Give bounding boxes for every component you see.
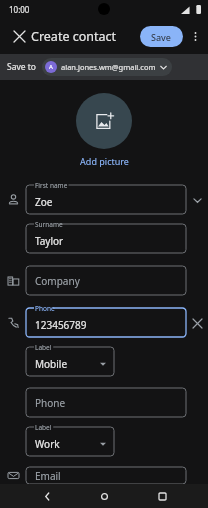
staticText: Save to <box>7 61 36 73</box>
staticText: Save <box>151 31 172 43</box>
button[interactable]: Label <box>26 347 114 376</box>
staticText: Taylor <box>35 234 64 248</box>
staticText: alan.jones.wm@gmail.com <box>61 62 156 72</box>
staticText: Mobile <box>35 357 68 371</box>
button[interactable]: Clear phone <box>188 314 206 332</box>
staticText: A <box>49 63 53 71</box>
staticText: Label <box>35 423 52 432</box>
staticText: Company <box>35 274 80 288</box>
button[interactable]: Email <box>26 467 186 484</box>
staticText: Phone <box>35 396 66 410</box>
button[interactable]: Add picture <box>80 155 129 167</box>
staticText: 123456789 <box>35 318 87 332</box>
button[interactable]: Company <box>26 266 186 295</box>
staticText: Surname <box>35 220 63 229</box>
staticText: Email <box>35 469 61 483</box>
staticText: Create contact <box>31 28 117 45</box>
button[interactable]: Save <box>140 26 183 47</box>
button[interactable]: Surname <box>26 224 186 253</box>
button[interactable]: Label <box>26 427 114 456</box>
staticText: Phone <box>35 304 55 313</box>
button[interactable]: Close <box>6 23 32 49</box>
button[interactable]: Recent apps <box>151 485 173 507</box>
button[interactable]: Back <box>36 485 58 507</box>
button[interactable]: Expand name fields <box>188 191 206 209</box>
staticText: 10:00 <box>9 4 30 15</box>
button[interactable]: Phone <box>26 308 186 337</box>
staticText: First name <box>35 181 68 190</box>
staticText: Label <box>35 343 52 352</box>
button[interactable]: More options <box>185 26 205 46</box>
button[interactable]: Add picture <box>76 93 132 149</box>
button[interactable]: Home <box>93 485 115 507</box>
button[interactable]: First name <box>26 185 186 214</box>
staticText: Zoe <box>35 195 53 209</box>
button[interactable]: Phone <box>26 388 186 417</box>
button[interactable]: A <box>42 58 172 76</box>
staticText: Work <box>35 437 60 451</box>
